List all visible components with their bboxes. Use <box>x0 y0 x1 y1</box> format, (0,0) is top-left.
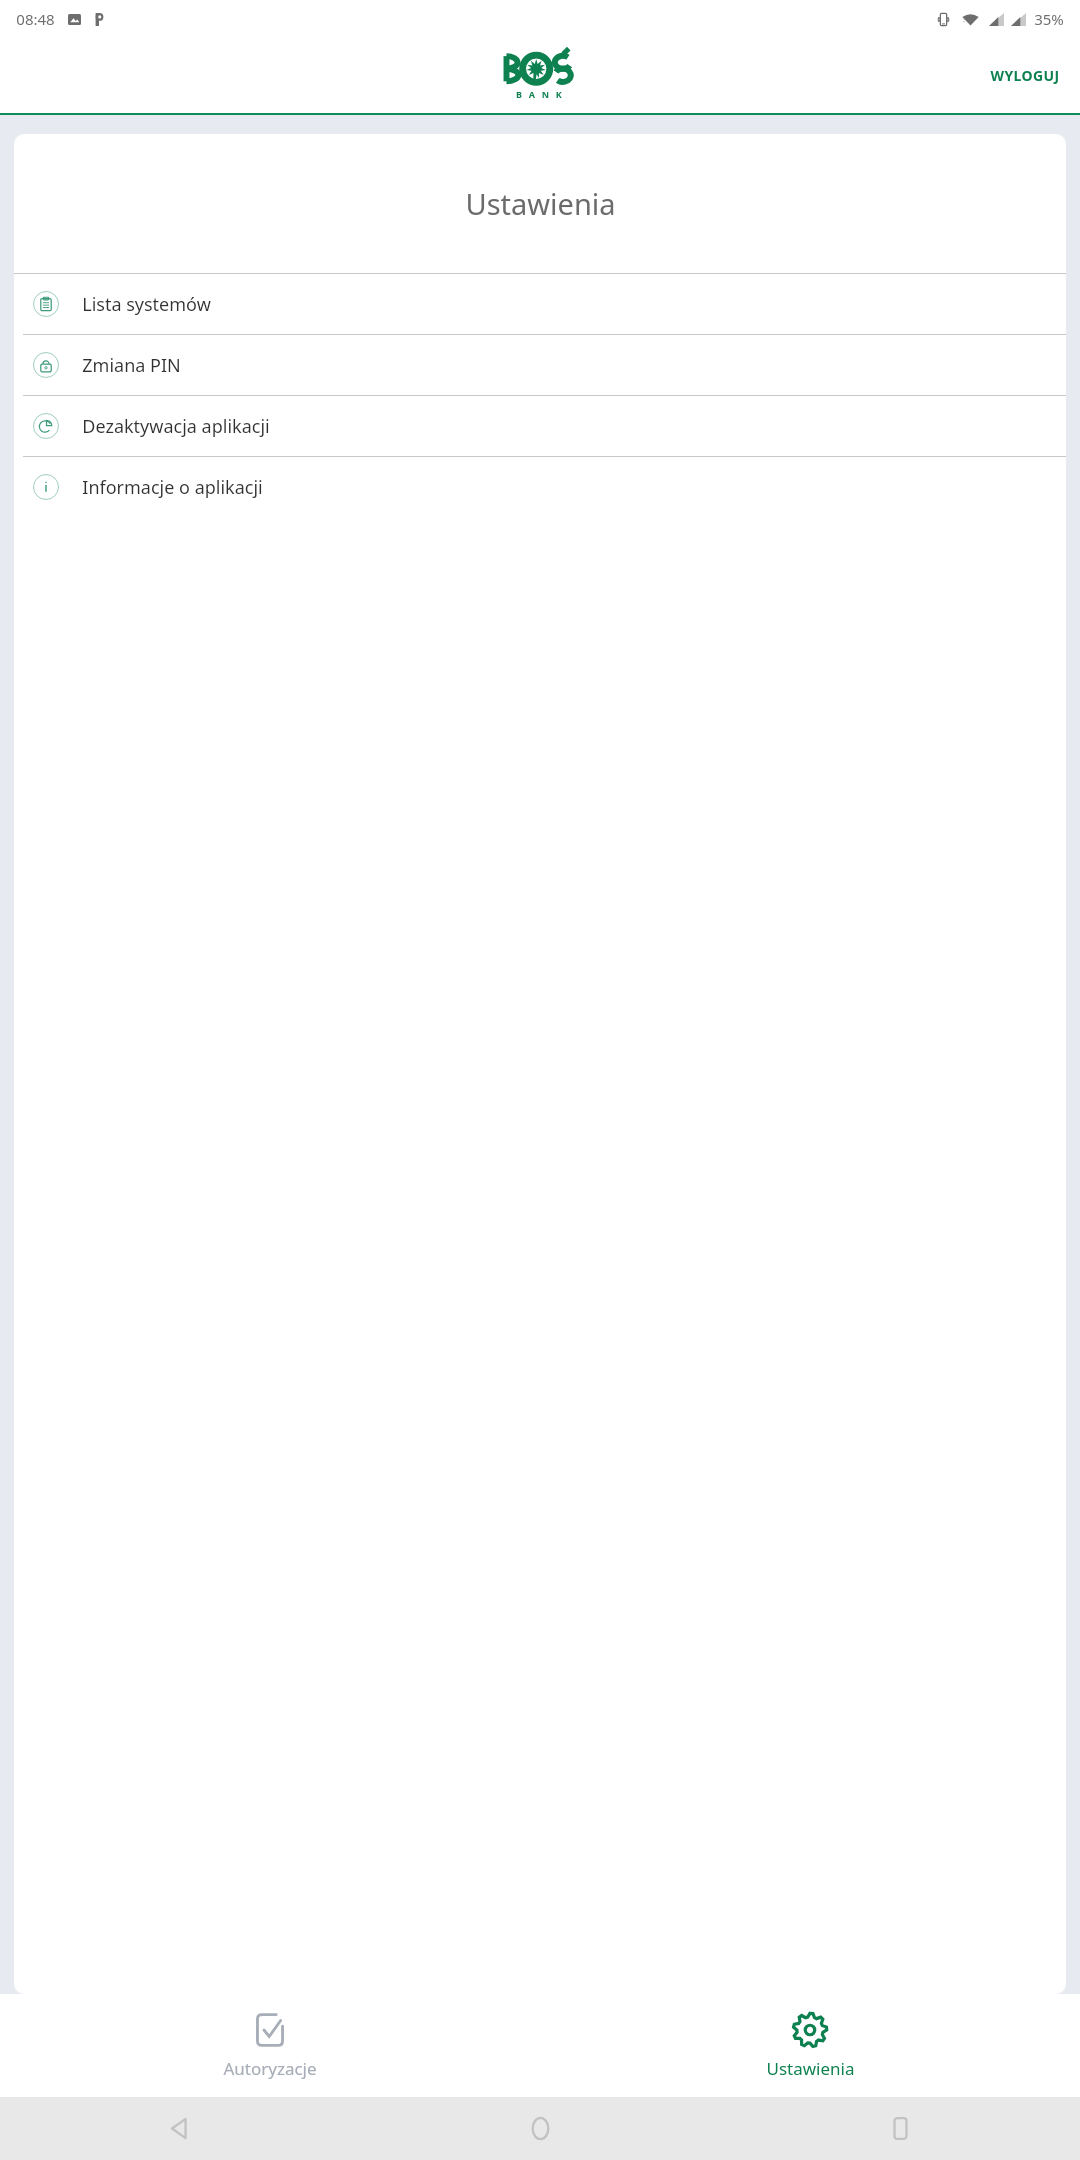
staticText: Zmiana PIN <box>82 353 181 378</box>
button[interactable]: Autoryzacje <box>0 1994 540 2097</box>
staticText: Dezaktywacja aplikacji <box>82 414 270 439</box>
staticText: Autoryzacje <box>223 2057 317 2080</box>
button[interactable]: Informacje o aplikacji <box>14 457 1066 517</box>
button[interactable]: WYLOGUJ <box>976 56 1074 95</box>
staticText: Ustawienia <box>465 184 616 223</box>
button[interactable]: Lista systemów <box>14 274 1066 334</box>
staticText: WYLOGUJ <box>990 66 1060 85</box>
staticText: 35% <box>1034 9 1064 29</box>
other: Recent apps <box>889 2117 912 2140</box>
button[interactable]: Zmiana PIN <box>14 335 1066 395</box>
staticText: B A N K <box>516 88 564 100</box>
other: Home <box>529 2117 552 2140</box>
other: Back <box>169 2117 192 2140</box>
button[interactable]: Dezaktywacja aplikacji <box>14 396 1066 456</box>
staticText: Ustawienia <box>766 2057 855 2080</box>
staticText: Lista systemów <box>82 292 211 317</box>
button[interactable]: Ustawienia <box>540 1994 1080 2097</box>
staticText: Informacje o aplikacji <box>82 475 263 500</box>
staticText: 08:48 <box>16 9 55 29</box>
